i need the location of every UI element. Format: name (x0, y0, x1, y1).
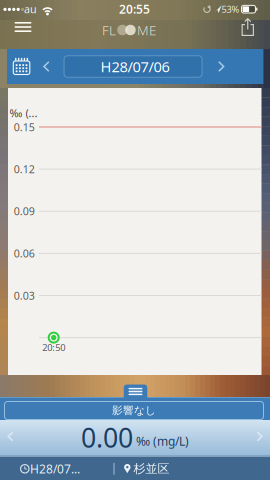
staticText: H28/07... (30, 461, 80, 477)
staticText: H28/07/06 (100, 57, 169, 76)
staticText: 影響なし (112, 404, 156, 417)
staticText: 0.00 (81, 420, 133, 455)
button[interactable]: Menu (8, 14, 38, 40)
staticText: FL (102, 21, 116, 39)
staticText: au (24, 2, 37, 16)
staticText: ‰ (... (9, 106, 37, 120)
staticText: 20:55 (119, 1, 150, 17)
staticText: 53% (221, 3, 239, 15)
button[interactable]: 影響なし (4, 401, 263, 419)
button[interactable]: Previous day (41, 61, 52, 72)
button[interactable]: Previous (6, 431, 16, 441)
staticText: 20:50 (42, 341, 65, 354)
button[interactable]: Next day (215, 61, 226, 72)
staticText: 0.03 (14, 288, 35, 303)
staticText: 0.06 (14, 246, 35, 260)
button[interactable]: Next (254, 431, 264, 441)
button[interactable]: H28/07/06 (64, 56, 202, 77)
staticText: ‰ (mg/L) (136, 433, 189, 449)
button[interactable]: Share (237, 15, 259, 39)
staticText: 杉並区 (133, 461, 169, 476)
button[interactable]: Expand panel (124, 384, 147, 400)
button[interactable]: Calendar (12, 57, 30, 75)
staticText: 0.15 (14, 120, 35, 134)
staticText: ME (137, 21, 156, 39)
staticText: 0.12 (14, 162, 35, 176)
staticText: 0.09 (14, 204, 35, 218)
